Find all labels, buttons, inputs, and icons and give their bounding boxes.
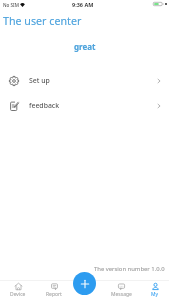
button[interactable]: My [138,280,169,300]
staticText: Set up [29,76,50,85]
staticText: Message [111,291,132,298]
staticText: The user center [3,14,82,29]
staticText: The version number 1.0.0 [94,265,165,273]
button[interactable]: feedback [0,93,169,118]
staticText: Device [10,291,26,298]
button[interactable]: Report [37,280,71,300]
button[interactable]: Message [104,280,138,300]
staticText: Report [46,291,62,298]
staticText: 9:36 AM [72,1,94,8]
staticText: feedback [29,101,60,110]
button[interactable]: Add [73,272,96,295]
button[interactable]: Device [1,280,35,300]
staticText: great [74,41,96,52]
staticText: No SIM [3,2,19,8]
staticText: My [151,291,159,298]
button[interactable]: Set up [0,68,169,93]
